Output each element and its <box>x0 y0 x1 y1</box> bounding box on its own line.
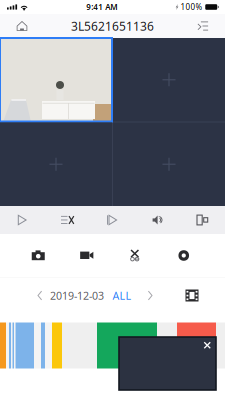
button[interactable]: Snapshot <box>14 234 62 277</box>
button[interactable]: Camera 1 live view <box>0 38 112 121</box>
button[interactable]: Channel list <box>181 14 225 38</box>
button[interactable]: Stream quality <box>180 206 225 234</box>
staticText: 2019-12-03 <box>50 288 104 303</box>
button[interactable]: Clip <box>111 234 159 277</box>
button[interactable]: Close <box>198 337 216 353</box>
button[interactable]: Video files <box>173 277 211 313</box>
staticText: ALL <box>112 288 131 303</box>
button[interactable]: Home <box>0 14 44 38</box>
button[interactable]: Next day <box>140 277 160 313</box>
button[interactable]: Settings <box>159 234 208 277</box>
staticText: 100% <box>180 2 202 12</box>
button[interactable]: Record <box>62 234 111 277</box>
button[interactable]: Add camera <box>0 122 112 206</box>
button[interactable]: Audio <box>135 206 180 234</box>
button[interactable]: Play <box>0 206 45 234</box>
staticText: 3L5621651136 <box>71 18 154 34</box>
button[interactable]: Previous day <box>30 277 50 313</box>
staticText: 9:41 AM <box>86 2 117 12</box>
button[interactable]: Stop all <box>45 206 90 234</box>
button[interactable]: ALL <box>104 277 140 313</box>
button[interactable]: Play all <box>90 206 135 234</box>
